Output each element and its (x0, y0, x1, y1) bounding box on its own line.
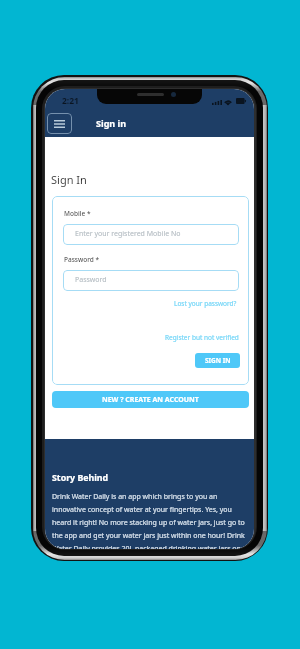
button[interactable]: SIGN IN (195, 353, 240, 368)
button[interactable]: NEW ? CREATE AN ACCOUNT (52, 391, 249, 408)
staticText: Enter your registered Mobile No (75, 229, 181, 239)
button[interactable]: Enter your registered Mobile No (63, 224, 239, 245)
staticText: Sign in (96, 117, 127, 129)
button[interactable]: Password (63, 270, 239, 291)
staticText: Drink Water Daily is an app which brings… (52, 492, 247, 549)
button[interactable]: Open navigation menu (47, 113, 72, 134)
button[interactable]: Lost your password? (174, 299, 237, 308)
staticText: Story Behind (52, 472, 109, 484)
staticText: SIGN IN (205, 356, 231, 365)
staticText: 2:21 (62, 95, 79, 107)
staticText: NEW ? CREATE AN ACCOUNT (102, 395, 199, 405)
staticText: Password (75, 275, 107, 285)
staticText: Sign In (51, 172, 87, 187)
staticText: Mobile * (64, 209, 91, 218)
button[interactable]: Register but not verified (165, 333, 239, 342)
staticText: Password * (64, 255, 100, 264)
